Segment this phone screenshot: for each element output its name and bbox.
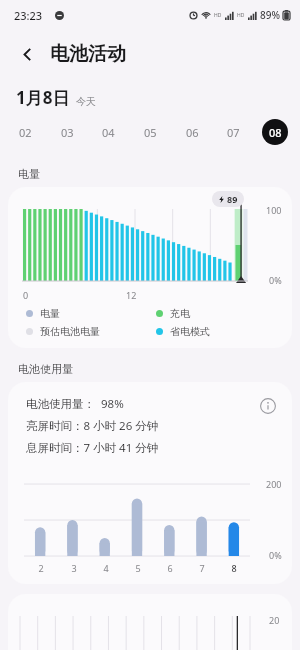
- staticText: 89: [227, 193, 238, 205]
- button[interactable]: 02: [12, 119, 38, 145]
- staticText: 亮屏时间：8 小时 26 分钟: [26, 418, 159, 434]
- button[interactable]: 06: [179, 119, 205, 145]
- staticText: 06: [186, 125, 199, 140]
- staticText: 1月8日: [16, 86, 70, 109]
- staticText: 电池使用量： 98%: [26, 396, 124, 412]
- staticText: 0%: [269, 549, 282, 561]
- staticText: 电量: [40, 307, 60, 320]
- staticText: 今天: [76, 95, 96, 108]
- staticText: 预估电池电量: [40, 325, 100, 338]
- button[interactable]: 03: [54, 119, 80, 145]
- staticText: 8: [231, 562, 237, 574]
- button[interactable]: 08: [262, 119, 288, 145]
- staticText: 0: [23, 289, 29, 301]
- staticText: 12: [126, 289, 137, 301]
- staticText: 100: [266, 204, 282, 216]
- staticText: 04: [102, 125, 115, 140]
- staticText: 20: [269, 614, 280, 626]
- staticText: 89%: [260, 8, 280, 22]
- button[interactable]: Info: [254, 392, 282, 420]
- staticText: 0%: [269, 274, 282, 286]
- staticText: HD: [237, 12, 245, 19]
- button[interactable]: 04: [95, 119, 121, 145]
- staticText: 4: [103, 562, 109, 574]
- staticText: 07: [227, 125, 240, 140]
- staticText: 充电: [170, 307, 190, 320]
- staticText: 省电模式: [170, 325, 210, 338]
- button[interactable]: 07: [220, 119, 246, 145]
- staticText: 电量: [18, 167, 40, 181]
- button[interactable]: 20: [8, 594, 292, 650]
- staticText: 7: [199, 562, 205, 574]
- button[interactable]: 电池使用量： 98%: [8, 382, 292, 584]
- staticText: 08: [269, 125, 282, 140]
- staticText: 息屏时间：7 小时 41 分钟: [26, 440, 159, 456]
- staticText: 6: [167, 562, 173, 574]
- staticText: HD: [214, 12, 222, 19]
- staticText: 200: [266, 478, 282, 490]
- button[interactable]: 89: [8, 187, 292, 348]
- staticText: 3: [71, 562, 77, 574]
- staticText: 02: [19, 125, 32, 140]
- staticText: 05: [144, 125, 157, 140]
- staticText: 电池使用量: [18, 362, 73, 376]
- button[interactable]: Back: [10, 37, 44, 71]
- staticText: 2: [38, 562, 44, 574]
- staticText: 23:23: [14, 8, 43, 23]
- button[interactable]: 05: [137, 119, 163, 145]
- staticText: 电池活动: [50, 42, 126, 66]
- staticText: 5: [135, 562, 141, 574]
- staticText: 03: [61, 125, 74, 140]
